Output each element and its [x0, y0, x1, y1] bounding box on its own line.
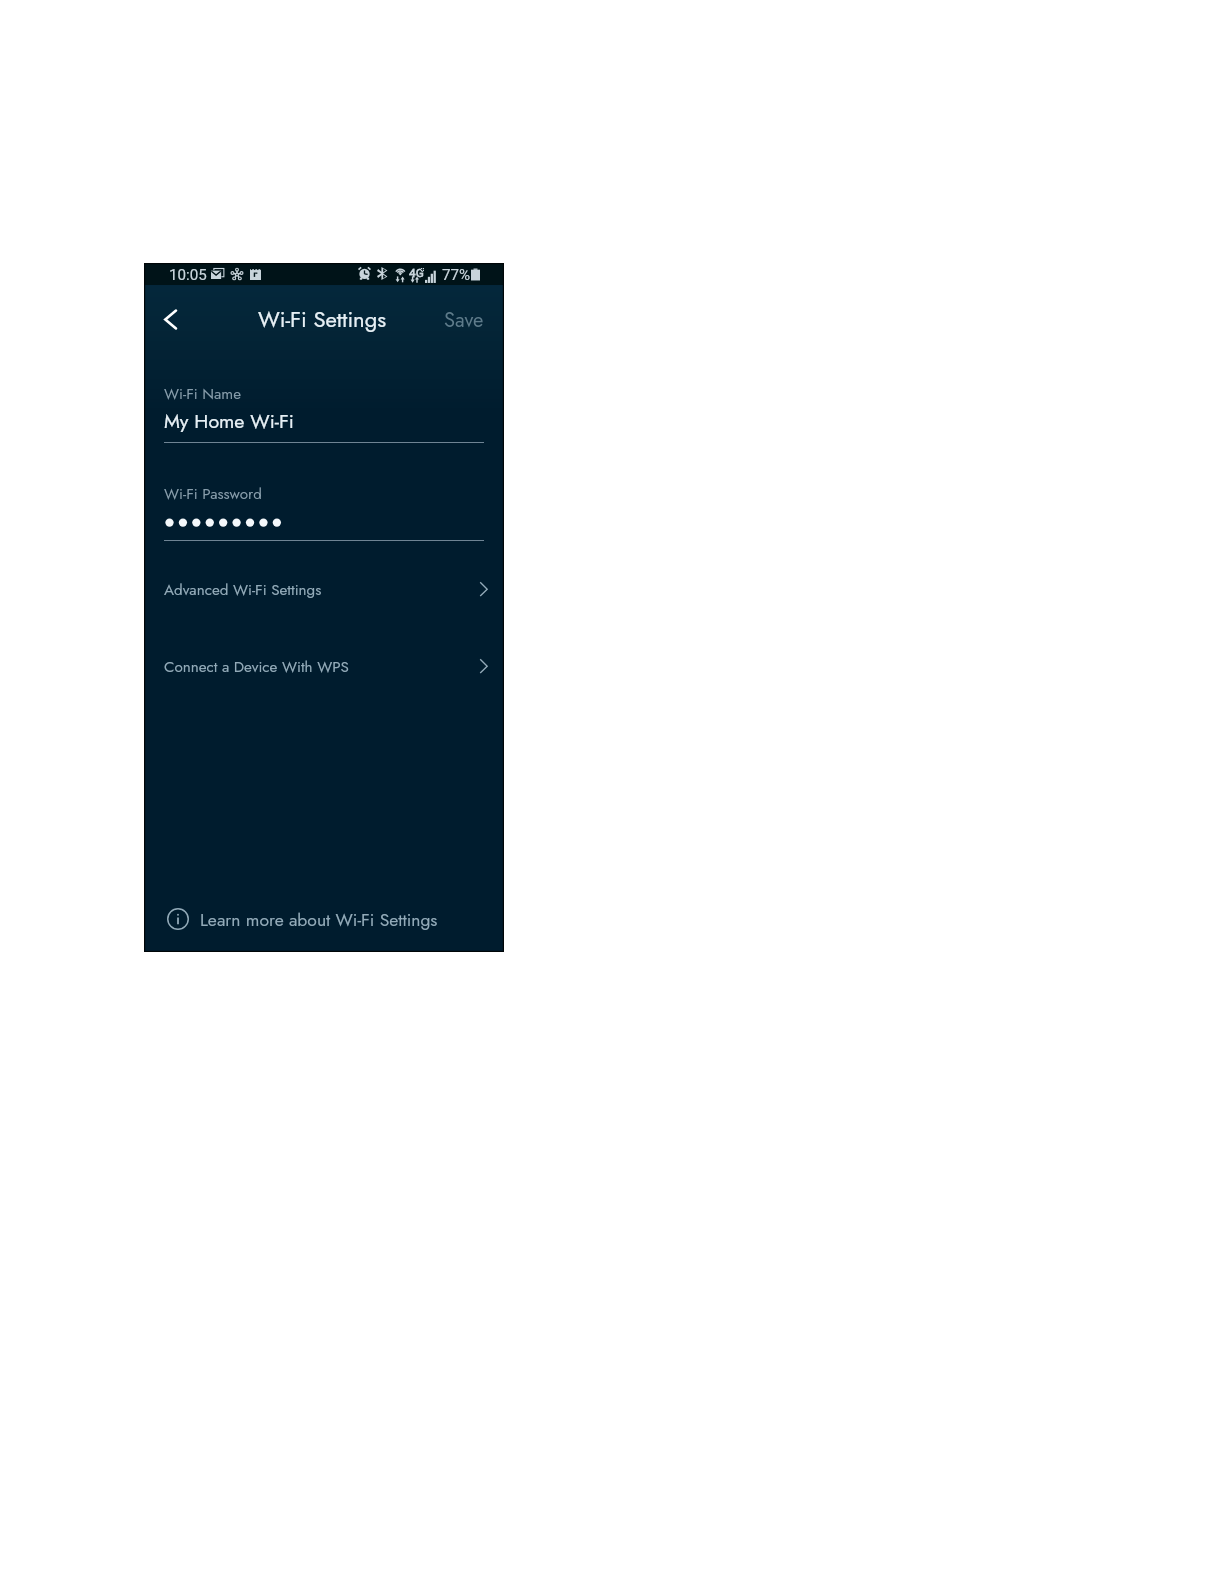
staticText: Wi-Fi Settings	[258, 303, 387, 335]
staticText: Wi-Fi Password	[164, 483, 262, 505]
staticText: 77%	[442, 266, 471, 284]
button[interactable]: Save	[431, 298, 484, 340]
button[interactable]: Connect a Device With WPS	[144, 645, 504, 693]
staticText: 4G	[409, 266, 424, 280]
staticText: Learn more about Wi-Fi Settings	[200, 907, 438, 932]
staticText: 10:05	[169, 266, 207, 284]
button[interactable]: Learn more about Wi-Fi Settings	[144, 893, 504, 935]
button[interactable]: Back	[150, 299, 190, 339]
staticText: My Home Wi-Fi	[164, 407, 294, 435]
staticText: Advanced Wi-Fi Settings	[164, 579, 322, 601]
staticText: Connect a Device With WPS	[164, 656, 349, 678]
staticText: Save	[444, 305, 484, 334]
staticText: Wi-Fi Name	[164, 383, 242, 405]
button[interactable]: Advanced Wi-Fi Settings	[144, 568, 504, 616]
